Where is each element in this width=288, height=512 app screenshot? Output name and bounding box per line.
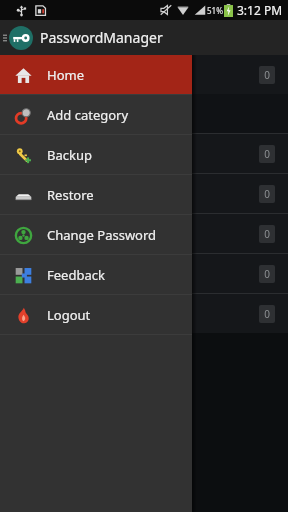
staticText: Add category — [47, 106, 129, 124]
button[interactable]: Feedback — [0, 255, 192, 294]
staticText: Restore — [47, 186, 94, 204]
button[interactable]: Restore — [0, 175, 192, 214]
staticText: 3:12 PM — [237, 2, 283, 18]
button[interactable]: 0 — [0, 174, 288, 213]
button[interactable]: Change Password — [0, 215, 192, 254]
staticText: 0 — [264, 227, 270, 241]
button[interactable]: Backup — [0, 135, 192, 174]
button[interactable]: Open navigation drawer — [1, 20, 35, 55]
staticText: 0 — [264, 147, 270, 161]
staticText: 0 — [264, 68, 270, 82]
button[interactable]: 0 — [0, 55, 288, 94]
staticText: Feedback — [47, 266, 105, 284]
staticText: Backup — [47, 146, 92, 164]
button[interactable]: Home — [0, 55, 192, 94]
staticText: PasswordManager — [40, 28, 163, 47]
button[interactable]: 0 — [0, 214, 288, 253]
staticText: 0 — [264, 187, 270, 201]
button[interactable]: Add category — [0, 95, 192, 134]
staticText: Home — [47, 66, 84, 84]
button[interactable]: 0 — [0, 254, 288, 293]
staticText: Logout — [47, 306, 91, 324]
staticText: 0 — [264, 267, 270, 281]
button[interactable]: 0 — [0, 134, 288, 173]
button[interactable]: 0 — [0, 294, 288, 333]
staticText: 0 — [264, 307, 270, 321]
button[interactable]: Logout — [0, 295, 192, 334]
staticText: 51% — [207, 5, 223, 16]
staticText: Change Password — [47, 226, 157, 244]
